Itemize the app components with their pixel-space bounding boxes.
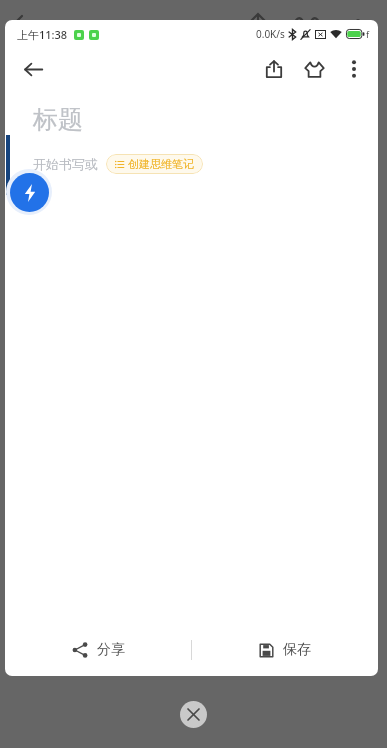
button[interactable]: 主题 (294, 49, 334, 89)
button[interactable]: 保存 (191, 624, 378, 676)
staticText: 开始书写或 (33, 156, 98, 172)
staticText: 0.0K/s (256, 27, 285, 41)
staticText: 保存 (283, 641, 311, 659)
staticText: 上午11:38 (17, 27, 68, 42)
button[interactable]: 分享 (254, 49, 294, 89)
staticText: 分享 (97, 641, 125, 659)
button[interactable]: 快捷操作 (10, 173, 49, 212)
staticText: 创建思维笔记 (128, 157, 194, 171)
staticText: 标题 (33, 104, 83, 135)
staticText: f (366, 28, 370, 40)
button[interactable]: 更多选项 (334, 49, 374, 89)
button[interactable]: 关闭 (180, 701, 207, 728)
button[interactable]: 创建思维笔记 (106, 154, 203, 174)
button[interactable]: 分享 (5, 624, 191, 676)
button[interactable]: 返回 (14, 50, 52, 88)
